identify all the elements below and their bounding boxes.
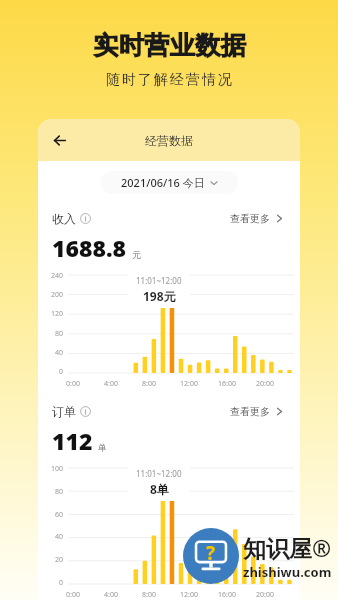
staticText: 11:01~12:00 [136, 468, 182, 479]
staticText: 80 [55, 487, 64, 497]
staticText: 0:00 [66, 590, 80, 600]
staticText: 80 [55, 329, 64, 339]
staticText: 8:00 [142, 379, 156, 389]
staticText: 查看更多 [230, 405, 270, 418]
staticText: 60 [55, 510, 64, 520]
staticText: 20 [55, 555, 64, 565]
staticText: 元 [132, 249, 141, 260]
staticText: 12:00 [180, 590, 198, 600]
staticText: ? [206, 540, 216, 566]
button[interactable]: 查看更多 [228, 210, 286, 227]
staticText: 0 [59, 367, 64, 377]
staticText: 查看更多 [230, 212, 270, 225]
staticText: 198元 [143, 288, 176, 304]
button[interactable]: Back [46, 127, 72, 153]
staticText: 100 [51, 464, 64, 474]
staticText: 0:00 [66, 379, 80, 389]
staticText: 4:00 [104, 379, 118, 389]
staticText: 200 [51, 290, 64, 300]
staticText: 单 [98, 442, 107, 453]
staticText: 120 [51, 309, 64, 319]
staticText: 20:00 [256, 590, 274, 600]
staticText: 12:00 [180, 379, 198, 389]
staticText: 16:00 [218, 379, 236, 389]
staticText: 4:00 [104, 590, 118, 600]
button[interactable]: 2021/06/16 今日 [101, 171, 238, 194]
staticText: 40 [55, 348, 64, 358]
staticText: zhishiwu.com [243, 563, 332, 581]
staticText: 112 [52, 425, 93, 456]
staticText: 240 [51, 271, 64, 281]
button[interactable]: 查看更多 [228, 403, 286, 420]
staticText: 0 [59, 578, 64, 588]
staticText: 8单 [150, 481, 169, 497]
staticText: 经营数据 [145, 133, 193, 148]
staticText: 20:00 [256, 379, 274, 389]
staticText: 订单 [52, 404, 76, 419]
staticText: 实时营业数据 [93, 30, 246, 61]
staticText: 8:00 [142, 590, 156, 600]
staticText: 40 [55, 532, 64, 542]
staticText: 随时了解经营情况 [105, 71, 233, 89]
staticText: 收入 [52, 211, 76, 226]
staticText: 2021/06/16 今日 [121, 175, 205, 190]
staticText: 11:01~12:00 [136, 275, 182, 286]
button[interactable]: Info [80, 406, 91, 417]
staticText: 1688.8 [52, 232, 127, 263]
staticText: 16:00 [218, 590, 236, 600]
button[interactable]: Info [80, 213, 91, 224]
staticText: 知识屋® [243, 532, 332, 563]
